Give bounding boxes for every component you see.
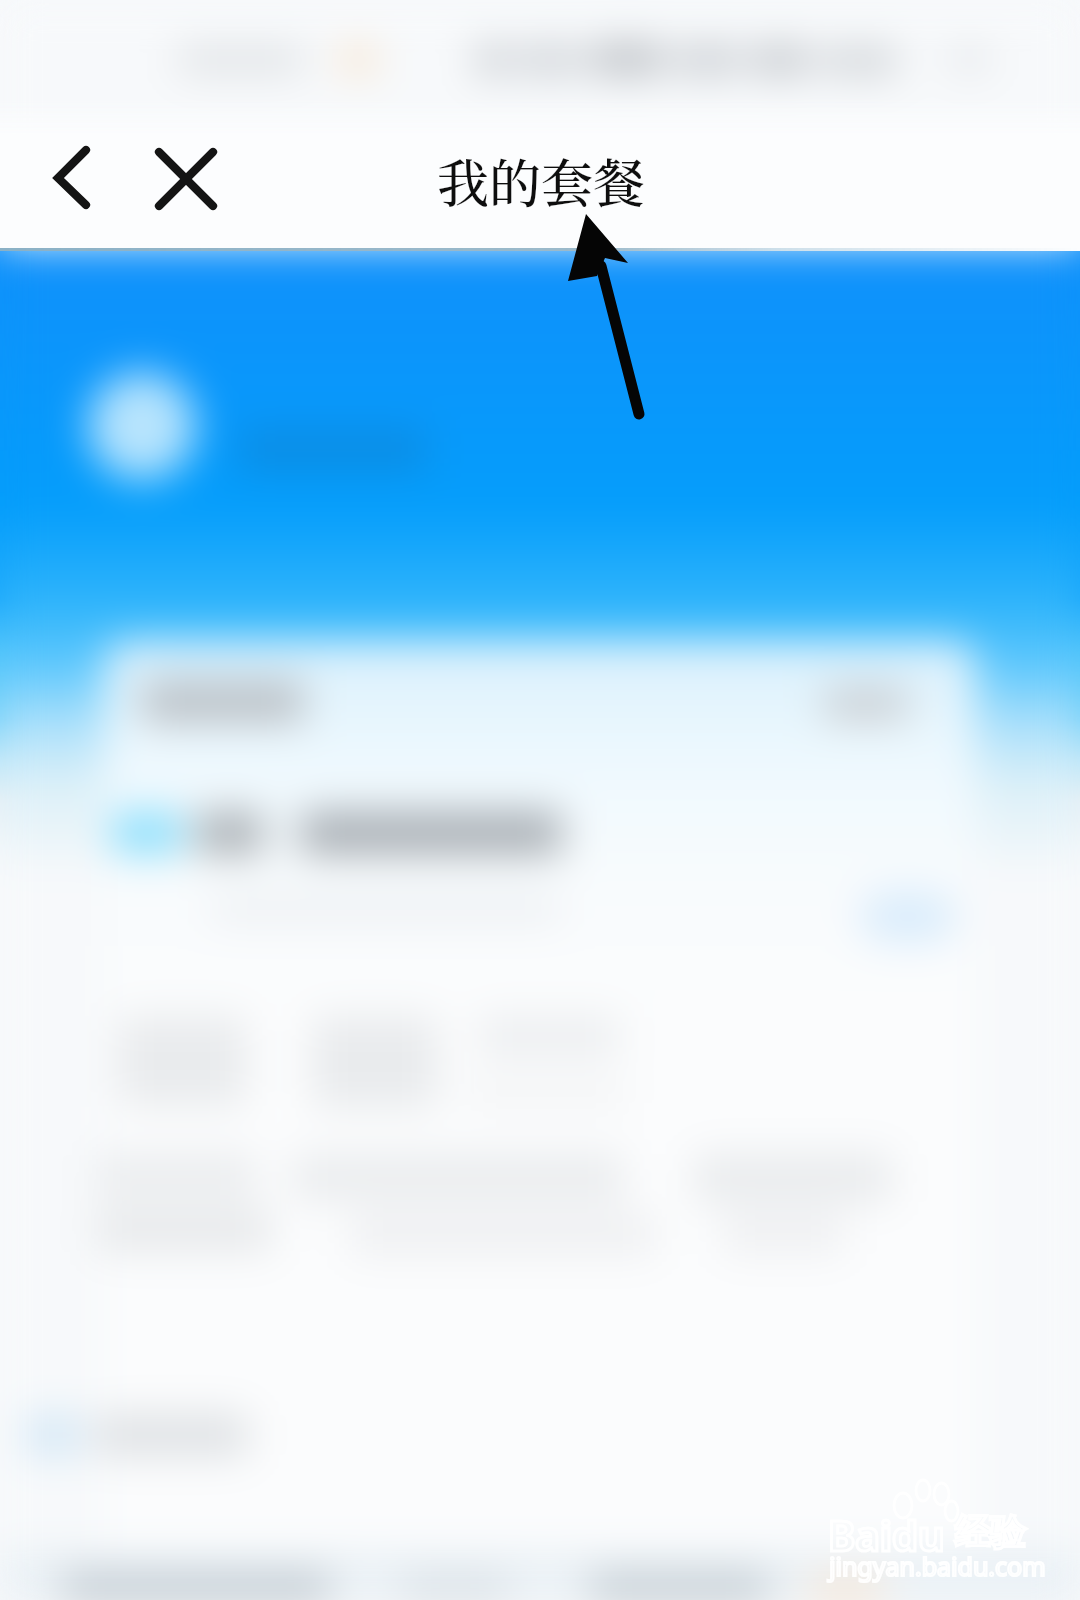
button[interactable]: Close — [134, 127, 238, 231]
staticText: jingyan.baidu.com — [829, 1549, 1046, 1583]
staticText: Baidu — [828, 1507, 945, 1563]
staticText: 经验 — [955, 1510, 1025, 1554]
staticText: 我的套餐 — [437, 143, 646, 218]
button[interactable]: Back — [6, 126, 110, 230]
